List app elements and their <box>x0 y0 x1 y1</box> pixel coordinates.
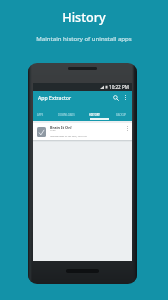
button[interactable]: HISTORY <box>89 112 100 117</box>
staticText: History <box>62 9 106 26</box>
staticText: App Extractor <box>38 94 72 101</box>
staticText: Brain It On! <box>50 125 72 130</box>
button[interactable]: APPS <box>37 112 44 117</box>
staticText: BACKUP <box>116 113 127 117</box>
staticText: 17.02 <box>50 129 56 132</box>
button[interactable]: Brain It On! <box>33 123 132 140</box>
button[interactable]: BACKUP <box>116 112 127 117</box>
staticText: 10:22 PM <box>109 84 129 90</box>
staticText: DOWNLOADS <box>58 113 75 117</box>
button[interactable]: DOWNLOADS <box>58 112 75 117</box>
button[interactable]: Search <box>111 93 121 103</box>
staticText: Maintain history of uninstall apps <box>36 34 132 42</box>
staticText: Uninstall date: 27 Apr 2016, 10:21 PM <box>50 135 87 138</box>
button[interactable]: Item options <box>123 123 132 140</box>
staticText: APPS <box>37 113 44 117</box>
staticText: HISTORY <box>89 113 100 117</box>
button[interactable]: More options <box>121 93 130 102</box>
